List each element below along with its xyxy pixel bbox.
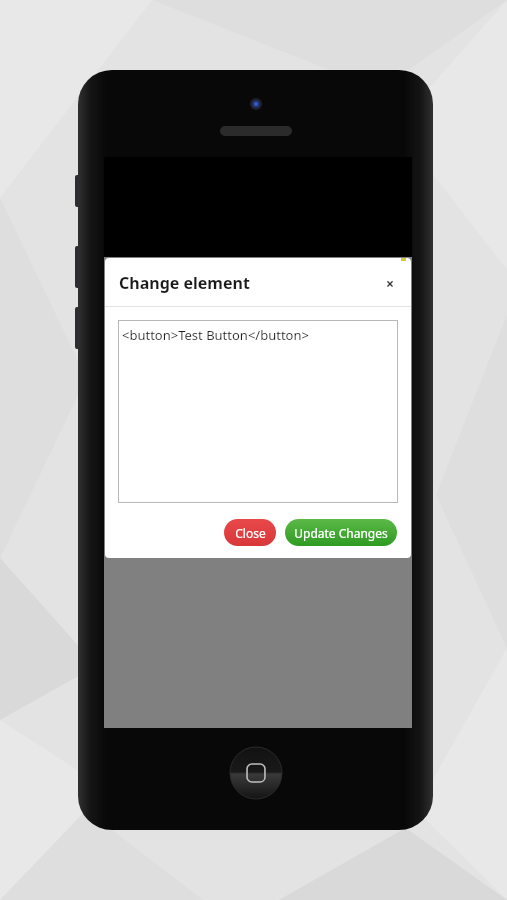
button[interactable]: Close — [224, 519, 276, 546]
staticText: Change element — [119, 272, 250, 294]
staticText: Close — [235, 525, 266, 541]
staticText: × — [386, 274, 395, 293]
staticText: Update Changes — [294, 525, 388, 541]
button[interactable]: Close dialog — [377, 270, 403, 296]
staticText: <button>Test Button</button> — [122, 326, 309, 344]
button[interactable]: Update Changes — [285, 519, 397, 546]
button[interactable]: Home — [230, 747, 282, 799]
